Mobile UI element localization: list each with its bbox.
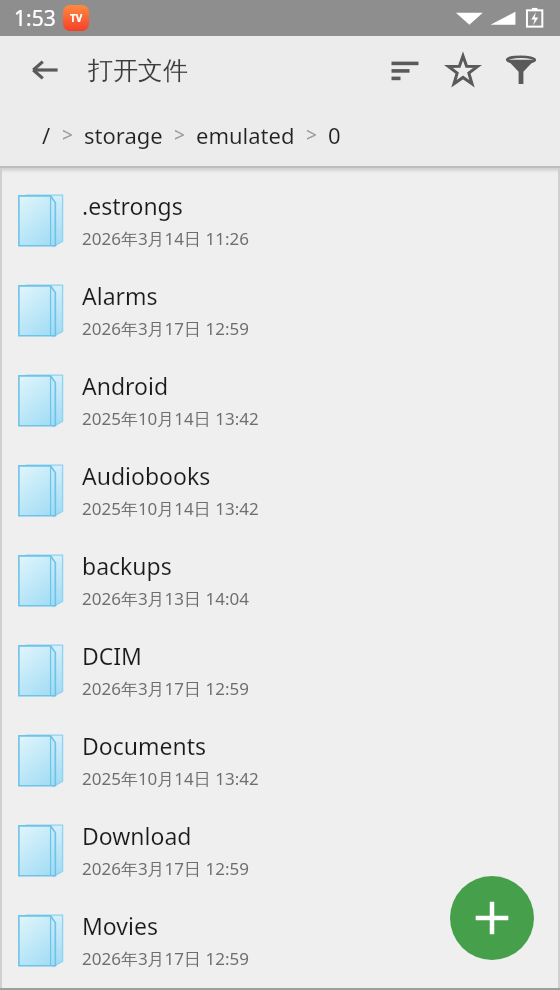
staticText: storage	[84, 120, 163, 150]
staticText: emulated	[196, 120, 295, 150]
button[interactable]: Movies	[0, 895, 560, 985]
button[interactable]: storage	[84, 120, 163, 150]
button[interactable]: Android	[0, 355, 560, 445]
button[interactable]: /	[42, 120, 51, 150]
staticText: DCIM	[82, 640, 142, 671]
button[interactable]: Favorites	[434, 41, 492, 99]
staticText: 1:53	[14, 4, 56, 33]
button[interactable]: Download	[0, 805, 560, 895]
staticText: 0	[328, 120, 341, 150]
staticText: 2026年3月17日 12:59	[82, 947, 249, 970]
staticText: >	[306, 122, 317, 148]
staticText: Download	[82, 820, 192, 851]
button[interactable]: backups	[0, 535, 560, 625]
staticText: .estrongs	[82, 190, 183, 221]
staticText: backups	[82, 550, 172, 581]
button[interactable]: Filter	[492, 41, 550, 99]
staticText: TV	[70, 11, 83, 25]
button[interactable]: Back	[22, 47, 68, 93]
staticText: Movies	[82, 910, 158, 941]
button[interactable]: Documents	[0, 715, 560, 805]
staticText: Android	[82, 370, 169, 401]
staticText: 2025年10月14日 13:42	[82, 497, 259, 520]
staticText: 2025年10月14日 13:42	[82, 407, 259, 430]
button[interactable]: emulated	[196, 120, 295, 150]
button[interactable]: Add	[450, 876, 534, 960]
staticText: 2026年3月17日 12:59	[82, 677, 249, 700]
staticText: 2026年3月14日 11:26	[82, 227, 249, 250]
button[interactable]: DCIM	[0, 625, 560, 715]
staticText: 2026年3月17日 12:59	[82, 317, 249, 340]
staticText: Alarms	[82, 280, 158, 311]
staticText: 2025年10月14日 13:42	[82, 767, 259, 790]
staticText: >	[62, 122, 73, 148]
staticText: Documents	[82, 730, 206, 761]
button[interactable]: Alarms	[0, 265, 560, 355]
staticText: Audiobooks	[82, 460, 211, 491]
staticText: >	[174, 122, 185, 148]
button[interactable]: .estrongs	[0, 175, 560, 265]
button[interactable]: Audiobooks	[0, 445, 560, 535]
button[interactable]: 0	[328, 120, 341, 150]
staticText: 2026年3月17日 12:59	[82, 857, 249, 880]
staticText: /	[42, 120, 51, 150]
staticText: 2026年3月13日 14:04	[82, 587, 249, 610]
staticText: 打开文件	[88, 55, 188, 86]
button[interactable]: Sort	[376, 41, 434, 99]
